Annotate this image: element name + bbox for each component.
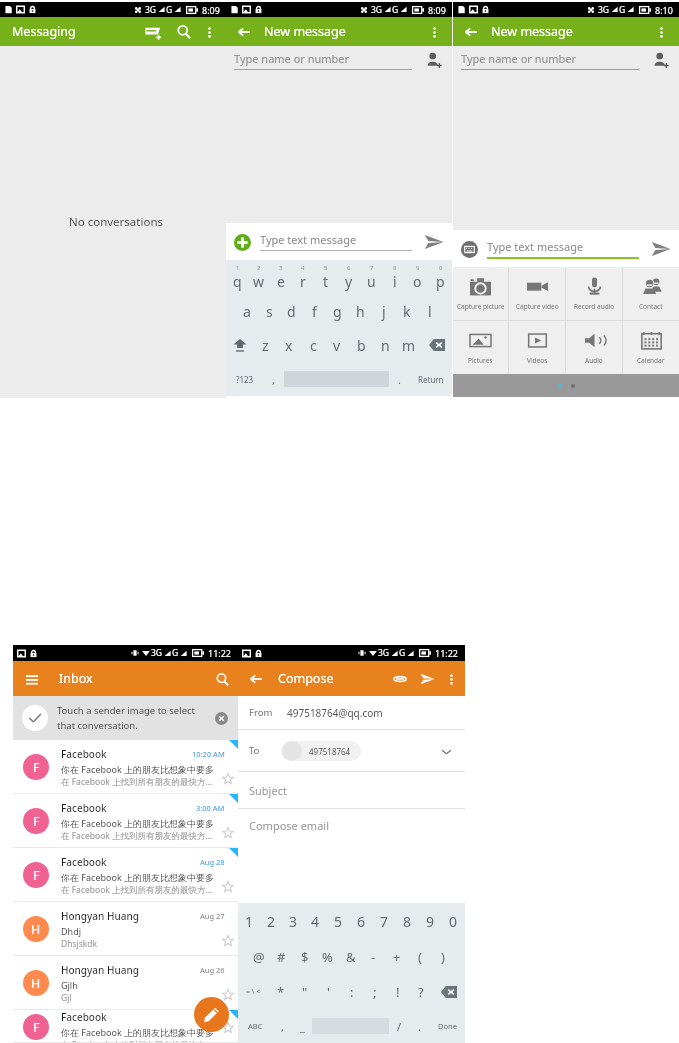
button[interactable]: Send (422, 230, 446, 254)
button[interactable]: Backspace (432, 974, 465, 1009)
button[interactable]: Pictures (453, 321, 508, 374)
button[interactable]: ' (317, 974, 340, 1009)
button[interactable]: Back (459, 20, 483, 44)
button[interactable]: Select conversation (13, 848, 238, 902)
button[interactable]: 2 (260, 903, 282, 939)
button[interactable]: More options (423, 21, 445, 43)
button[interactable]: s (258, 294, 280, 328)
button[interactable]: Search (210, 667, 234, 691)
button[interactable]: Videos (509, 321, 565, 374)
button[interactable]: 1 (226, 260, 248, 294)
button[interactable]: Star (222, 935, 234, 947)
button[interactable]: z (254, 328, 277, 362)
button[interactable]: Star (222, 773, 234, 785)
button[interactable]: n (373, 328, 397, 362)
button[interactable]: Compose email (238, 809, 465, 841)
button[interactable]: m (397, 328, 421, 362)
button[interactable]: x (277, 328, 301, 362)
button[interactable]: Capture video (509, 267, 565, 320)
button[interactable]: Messaging (0, 17, 226, 46)
button[interactable]: % (316, 939, 339, 974)
button[interactable]: Select conversation (23, 970, 49, 996)
button[interactable]: = \ < (238, 974, 269, 1009)
button[interactable]: Compose new email (194, 997, 229, 1032)
button[interactable]: b (349, 328, 373, 362)
button[interactable]: Back (226, 17, 452, 46)
button[interactable]: j (372, 294, 395, 328)
button[interactable]: Done (429, 1009, 465, 1043)
button[interactable]: 3 (282, 903, 304, 939)
button[interactable]: ( (408, 939, 431, 974)
button[interactable]: Select conversation (23, 862, 49, 888)
button[interactable]: Record audio (566, 267, 622, 320)
button[interactable]: Add contact (651, 50, 671, 70)
button[interactable]: / (389, 1009, 409, 1043)
button[interactable]: Contact (623, 267, 679, 320)
button[interactable]: Subject (238, 772, 465, 808)
button[interactable]: ?123 (226, 362, 263, 396)
button[interactable]: c (301, 328, 325, 362)
button[interactable]: 4 (304, 903, 327, 939)
button[interactable]: Select conversation (13, 902, 238, 956)
button[interactable]: f (303, 294, 326, 328)
button[interactable]: _ (292, 1009, 312, 1043)
button[interactable]: 7 (360, 260, 383, 294)
button[interactable]: & (339, 939, 362, 974)
button[interactable]: New message (142, 20, 166, 44)
button[interactable]: Select conversation (23, 916, 49, 942)
button[interactable]: 9 (419, 903, 442, 939)
button[interactable]: Send (416, 668, 438, 690)
button[interactable]: $ (293, 939, 316, 974)
button[interactable]: 5 (327, 903, 350, 939)
button[interactable]: " (293, 974, 317, 1009)
button[interactable]: ) (431, 939, 454, 974)
button[interactable]: l (418, 294, 441, 328)
button[interactable]: d (280, 294, 303, 328)
button[interactable]: 6 (337, 260, 360, 294)
button[interactable]: Open navigation drawer (20, 667, 44, 691)
button[interactable]: Audio (566, 321, 622, 374)
button[interactable]: Open navigation drawer (13, 661, 238, 696)
button[interactable]: Select conversation (13, 740, 238, 794)
button[interactable]: Back (244, 667, 268, 691)
button[interactable]: Capture picture (453, 267, 508, 320)
button[interactable]: + (385, 939, 408, 974)
button[interactable]: Select conversation (13, 956, 238, 1010)
button[interactable]: Star (222, 989, 234, 1001)
button[interactable]: . (389, 362, 410, 396)
button[interactable]: More options (198, 21, 220, 43)
button[interactable]: To (238, 730, 465, 771)
button[interactable]: Back (453, 17, 679, 46)
button[interactable]: 0 (442, 903, 465, 939)
button[interactable]: Expand recipients (436, 741, 456, 761)
button[interactable]: Select conversation (13, 1010, 238, 1043)
button[interactable]: ? (409, 974, 432, 1009)
button[interactable]: , (263, 362, 284, 396)
button[interactable]: Touch a sender image to select (13, 696, 238, 740)
button[interactable]: 9 (406, 260, 429, 294)
button[interactable]: # (270, 939, 293, 974)
button[interactable]: Select conversation (23, 754, 49, 780)
button[interactable]: - (362, 939, 385, 974)
button[interactable]: h (349, 294, 372, 328)
button[interactable]: Backspace (421, 328, 452, 362)
button[interactable]: Select conversation (13, 794, 238, 848)
button[interactable]: Star (222, 1022, 234, 1034)
button[interactable]: * (269, 974, 293, 1009)
button[interactable]: Star (222, 881, 234, 893)
button[interactable]: . (409, 1009, 429, 1043)
button[interactable]: ABC (238, 1009, 272, 1043)
button[interactable]: : (340, 974, 363, 1009)
button[interactable]: More options (441, 669, 461, 689)
button[interactable]: 6 (350, 903, 373, 939)
button[interactable]: Star (222, 827, 234, 839)
button[interactable]: Select conversation (23, 808, 49, 834)
button[interactable]: Attach file (389, 668, 411, 690)
button[interactable]: g (326, 294, 349, 328)
button[interactable]: 5 (314, 260, 337, 294)
button[interactable]: Select conversation (23, 1014, 49, 1040)
button[interactable]: 4 (292, 260, 314, 294)
button[interactable]: Back (238, 661, 465, 696)
button[interactable]: v (325, 328, 349, 362)
